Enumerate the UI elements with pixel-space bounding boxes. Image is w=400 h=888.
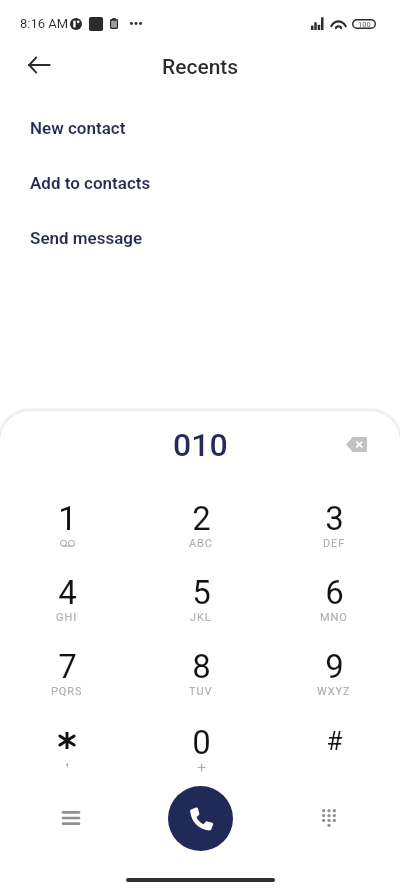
staticText: New contact [30,118,126,138]
button[interactable]: Call [168,786,233,851]
button[interactable]: 2 [134,499,267,559]
button[interactable]: New contact [0,118,400,156]
staticText: 3 [325,499,344,538]
staticText: 1 [58,499,77,538]
staticText: 8:16 AM [20,16,69,31]
staticText: 0 [192,723,211,762]
staticText: 7 [58,647,77,686]
staticText: 4 [58,573,77,612]
button[interactable]: 7 [0,647,134,707]
button[interactable]: Backspace [334,422,378,466]
staticText: 2 [192,499,211,538]
button[interactable]: 1 [0,499,134,559]
staticText: JKL [190,611,212,624]
button[interactable]: Back [17,43,61,87]
button[interactable]: 3 [267,499,400,559]
button[interactable]: Dialpad [307,796,351,840]
staticText: Add to contacts [30,173,151,193]
staticText: ABC [189,537,213,550]
staticText: Recents [162,55,239,80]
button[interactable]: Call log [49,796,93,840]
staticText: MNO [320,611,348,624]
button[interactable]: Add to contacts [0,173,400,211]
button[interactable]: 8 [134,647,267,707]
button[interactable]: Send message [0,228,400,266]
staticText: # [326,726,343,756]
staticText: 5 [192,573,211,612]
button[interactable]: 5 [134,573,267,633]
button[interactable]: # [267,723,400,783]
staticText: 9 [325,647,344,686]
staticText: 8 [192,647,211,686]
button[interactable]: 6 [267,573,400,633]
button[interactable]: 4 [0,573,134,633]
staticText: 010 [173,426,228,464]
staticText: GHI [56,611,78,624]
staticText: DEF [323,537,346,550]
staticText: TUV [189,685,213,698]
staticText: PQRS [51,685,83,698]
button[interactable]: 9 [267,647,400,707]
staticText: Send message [30,228,143,248]
staticText: 6 [325,573,344,612]
staticText: WXYZ [317,685,351,698]
button[interactable] [0,723,134,783]
button[interactable]: 0 [134,723,267,783]
staticText: 100 [358,20,371,29]
